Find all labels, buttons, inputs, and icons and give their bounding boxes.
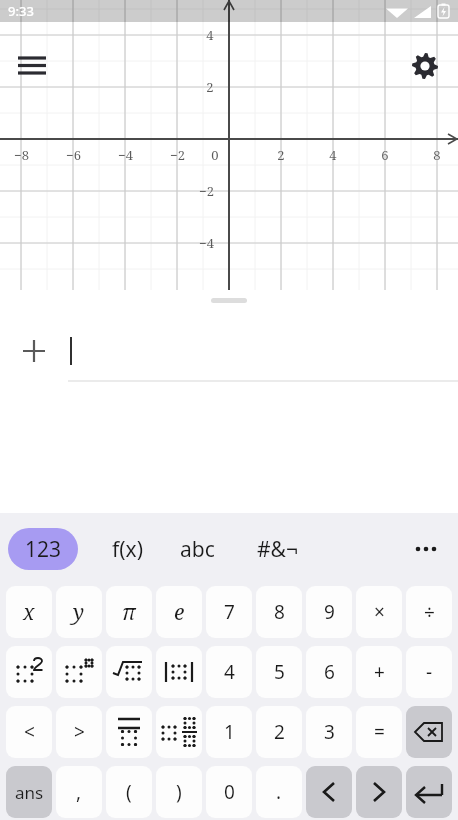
staticText: π <box>122 598 136 627</box>
staticText: 9:33 <box>8 2 34 20</box>
button[interactable]: 2 <box>256 706 302 758</box>
button[interactable]: 123 <box>8 528 78 570</box>
button[interactable]: π <box>106 586 152 638</box>
button[interactable]: Enter <box>406 766 452 818</box>
staticText: f(x) <box>112 535 143 564</box>
button[interactable]: - <box>406 646 452 698</box>
staticText: 123 <box>25 535 62 564</box>
staticText: 9 <box>324 599 335 625</box>
staticText: 2 <box>206 78 214 96</box>
staticText: abc <box>180 535 215 564</box>
staticText: −2 <box>199 182 214 200</box>
button[interactable]: Move right <box>356 766 402 818</box>
button[interactable]: , <box>56 766 102 818</box>
staticText: × <box>374 599 385 625</box>
staticText: ) <box>176 779 182 805</box>
staticText: y <box>73 598 85 627</box>
staticText: > <box>74 719 85 745</box>
button[interactable]: 6 <box>306 646 352 698</box>
button[interactable]: ( <box>106 766 152 818</box>
staticText: −4 <box>118 146 133 164</box>
staticText: + <box>374 659 385 685</box>
button[interactable]: ÷ <box>406 586 452 638</box>
button[interactable]: Backspace <box>406 706 452 758</box>
staticText: = <box>374 719 385 745</box>
staticText: 7 <box>224 599 235 625</box>
button[interactable]: > <box>56 706 102 758</box>
button[interactable]: Square <box>6 646 52 698</box>
button[interactable]: < <box>6 706 52 758</box>
button[interactable]: x <box>6 586 52 638</box>
button[interactable]: abc <box>166 528 228 570</box>
button[interactable]: Menu <box>10 44 54 88</box>
button[interactable]: Move left <box>306 766 352 818</box>
button[interactable]: × <box>356 586 402 638</box>
staticText: ( <box>126 779 132 805</box>
button[interactable]: 3 <box>306 706 352 758</box>
staticText: x <box>23 598 35 627</box>
staticText: 2 <box>277 146 285 164</box>
button[interactable]: Settings <box>403 44 447 88</box>
button[interactable]: 4 <box>206 646 252 698</box>
button[interactable]: f(x) <box>96 528 158 570</box>
staticText: 4 <box>329 146 337 164</box>
button[interactable]: 0 <box>206 766 252 818</box>
button[interactable]: ) <box>156 766 202 818</box>
staticText: , <box>76 779 82 805</box>
staticText: 6 <box>381 146 389 164</box>
staticText: 6 <box>324 659 335 685</box>
button[interactable]: #&¬ <box>242 528 312 570</box>
staticText: −6 <box>66 146 81 164</box>
staticText: < <box>24 719 35 745</box>
staticText: −2 <box>170 146 185 164</box>
button[interactable]: 9 <box>306 586 352 638</box>
button[interactable]: Fraction <box>106 706 152 758</box>
button[interactable]: = <box>356 706 402 758</box>
button[interactable]: 5 <box>256 646 302 698</box>
staticText: 1 <box>224 719 235 745</box>
button[interactable]: Power <box>56 646 102 698</box>
staticText: #&¬ <box>257 535 298 564</box>
button[interactable]: 7 <box>206 586 252 638</box>
button[interactable]: . <box>256 766 302 818</box>
button[interactable]: + <box>356 646 402 698</box>
staticText: 0 <box>224 779 235 805</box>
staticText: e <box>174 598 185 627</box>
staticText: ans <box>15 781 44 804</box>
staticText: 4 <box>206 26 214 44</box>
staticText: . <box>276 779 282 805</box>
button[interactable]: y <box>56 586 102 638</box>
button[interactable]: Square root <box>106 646 152 698</box>
button[interactable]: Mixed number <box>156 706 202 758</box>
button[interactable]: ans <box>6 766 52 818</box>
staticText: 8 <box>274 599 285 625</box>
button[interactable]: Add expression <box>0 320 68 382</box>
staticText: 4 <box>224 659 235 685</box>
button[interactable]: e <box>156 586 202 638</box>
staticText: - <box>426 659 433 685</box>
button[interactable]: 8 <box>256 586 302 638</box>
staticText: 0 <box>211 146 219 164</box>
staticText: 2 <box>274 719 285 745</box>
staticText: 8 <box>433 146 441 164</box>
staticText: 3 <box>324 719 335 745</box>
button[interactable]: More options <box>404 527 448 571</box>
button[interactable]: Absolute value <box>156 646 202 698</box>
staticText: ÷ <box>424 599 435 625</box>
staticText: −4 <box>199 234 214 252</box>
staticText: −8 <box>14 146 29 164</box>
staticText: 5 <box>274 659 285 685</box>
button[interactable]: Add expression <box>0 320 458 382</box>
button[interactable]: 1 <box>206 706 252 758</box>
